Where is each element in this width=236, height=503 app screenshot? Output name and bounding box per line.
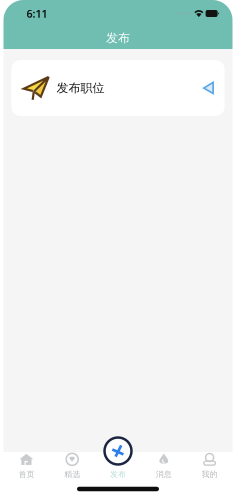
button[interactable]: 发布 bbox=[95, 449, 141, 484]
staticText: 消息 bbox=[156, 469, 172, 479]
staticText: 6:11 bbox=[26, 6, 47, 21]
button[interactable]: 消息 bbox=[141, 449, 187, 484]
button[interactable]: 我的 bbox=[187, 449, 232, 484]
button[interactable]: 首页 bbox=[3, 449, 49, 484]
button[interactable]: 发布 bbox=[3, 27, 232, 49]
staticText: 我的 bbox=[202, 469, 218, 479]
staticText: 精选 bbox=[64, 469, 80, 479]
button[interactable]: 发布 bbox=[104, 437, 132, 465]
staticText: 发布 bbox=[110, 469, 126, 479]
staticText: 发布 bbox=[106, 31, 130, 45]
button[interactable]: 发布职位 bbox=[11, 60, 224, 116]
button[interactable]: 精选 bbox=[49, 449, 95, 484]
staticText: 首页 bbox=[18, 469, 34, 479]
staticText: 发布职位 bbox=[56, 81, 104, 95]
